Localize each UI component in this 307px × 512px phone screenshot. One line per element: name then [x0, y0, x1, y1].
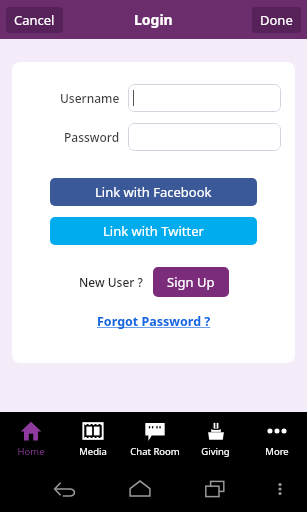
button[interactable] [128, 84, 281, 112]
staticText: Sign Up [167, 273, 215, 291]
button[interactable]: Done [252, 7, 301, 33]
button[interactable]: More [246, 412, 307, 465]
button[interactable]: Home [0, 412, 62, 465]
button[interactable]: Giving [185, 412, 246, 465]
staticText: Forgot Password ? [97, 313, 211, 330]
staticText: Link with Facebook [95, 183, 212, 201]
staticText: Media [79, 445, 107, 458]
staticText: Password [64, 129, 120, 145]
button[interactable]: Cancel [6, 7, 63, 33]
staticText: Home [17, 445, 45, 458]
button[interactable]: Forgot Password ? [93, 311, 215, 332]
staticText: Login [134, 10, 173, 29]
button[interactable]: More options [264, 473, 296, 505]
button[interactable]: Link with Twitter [50, 217, 257, 245]
staticText: Link with Twitter [103, 222, 204, 240]
button[interactable]: Media [62, 412, 124, 465]
staticText: Cancel [14, 11, 55, 29]
staticText: More [265, 445, 289, 458]
staticText: Chat Room [130, 445, 180, 458]
staticText: Giving [201, 445, 230, 458]
button[interactable]: Home [118, 467, 162, 511]
button[interactable] [128, 123, 281, 151]
button[interactable]: Recent apps [193, 467, 237, 511]
staticText: Done [260, 11, 293, 29]
staticText: New User ? [79, 274, 143, 290]
button[interactable]: Sign Up [153, 267, 229, 297]
button[interactable]: Link with Facebook [50, 178, 257, 206]
staticText: Username [60, 90, 120, 106]
button[interactable]: Back [43, 467, 87, 511]
button[interactable]: Chat Room [124, 412, 185, 465]
